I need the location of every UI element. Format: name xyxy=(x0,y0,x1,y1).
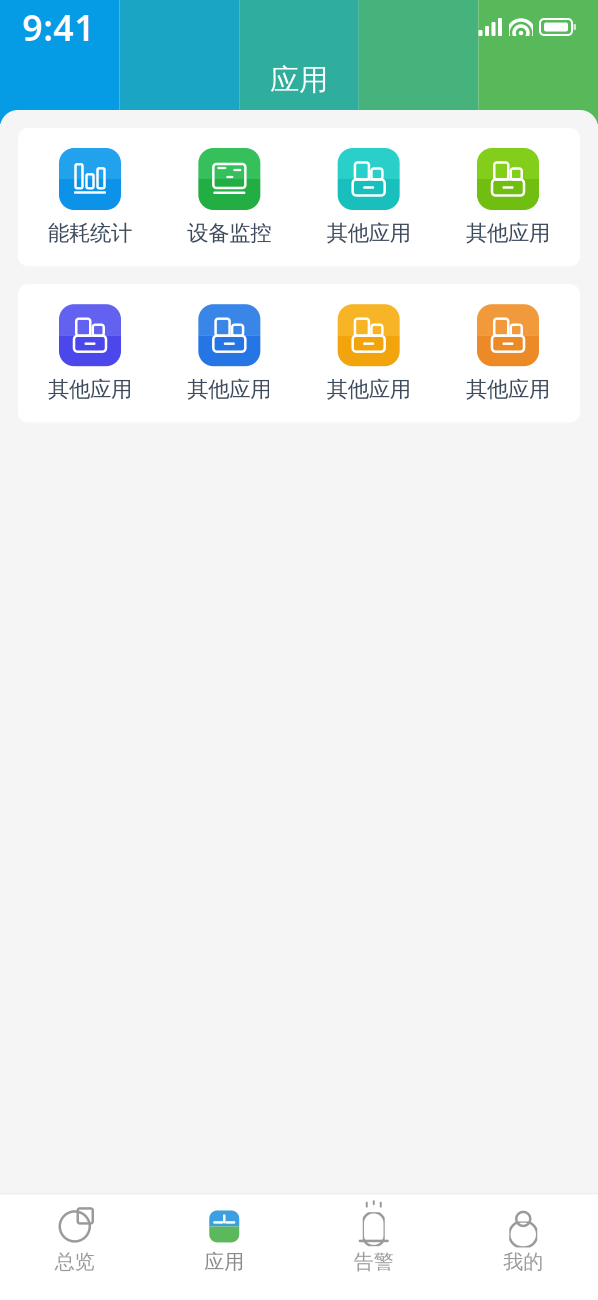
staticText: 应用 xyxy=(204,1249,244,1274)
staticText: 其他应用 xyxy=(466,376,550,402)
button[interactable]: 我的 xyxy=(448,1202,598,1282)
button[interactable]: 设备监控 xyxy=(165,148,293,246)
button[interactable]: 其他应用 xyxy=(305,148,433,246)
staticText: 其他应用 xyxy=(466,220,550,246)
staticText: 应用 xyxy=(270,62,328,98)
button[interactable]: 总览 xyxy=(0,1202,149,1282)
staticText: 其他应用 xyxy=(187,376,271,402)
button[interactable]: 能耗统计 xyxy=(26,148,154,246)
button[interactable]: 告警 xyxy=(299,1202,448,1282)
staticText: 我的 xyxy=(503,1249,543,1274)
staticText: 其他应用 xyxy=(48,376,132,402)
button[interactable]: 其他应用 xyxy=(444,304,572,402)
staticText: 其他应用 xyxy=(327,376,411,402)
staticText: 能耗统计 xyxy=(48,220,132,246)
staticText: 总览 xyxy=(55,1249,95,1274)
staticText: 9:41 xyxy=(22,3,95,51)
button[interactable]: 其他应用 xyxy=(26,304,154,402)
staticText: 其他应用 xyxy=(327,220,411,246)
button[interactable]: 应用 xyxy=(149,1202,299,1282)
button[interactable]: 其他应用 xyxy=(165,304,293,402)
staticText: 告警 xyxy=(354,1249,394,1274)
button[interactable]: 其他应用 xyxy=(444,148,572,246)
button[interactable]: 其他应用 xyxy=(305,304,433,402)
staticText: 设备监控 xyxy=(187,220,271,246)
